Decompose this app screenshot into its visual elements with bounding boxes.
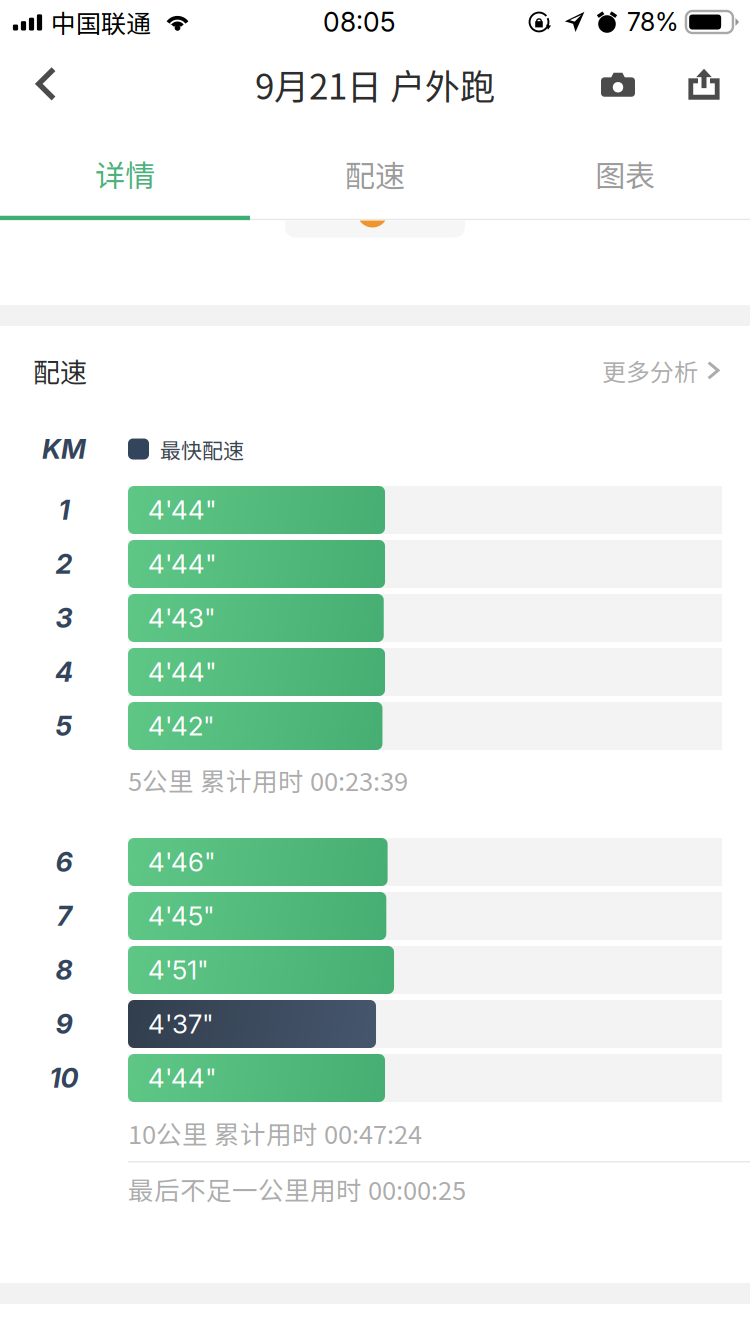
staticText: 10 (49, 1062, 78, 1094)
staticText: 7 (56, 900, 71, 932)
staticText: 08:05 (323, 6, 396, 38)
staticText: 中国联通 (51, 4, 151, 40)
staticText: 4'43" (148, 602, 216, 634)
button[interactable]: 配速 (250, 124, 500, 215)
button[interactable]: Back (11, 44, 79, 124)
staticText: 4'46" (148, 846, 216, 878)
staticText: 9 (55, 1008, 72, 1040)
staticText: 配速 (33, 351, 87, 390)
staticText: 8 (55, 954, 72, 986)
staticText: 1 (58, 494, 69, 526)
staticText: 6 (55, 846, 72, 878)
button[interactable]: 详情 (0, 124, 250, 215)
staticText: 10公里 累计用时 00:47:24 (128, 1114, 422, 1151)
staticText: KM (42, 433, 86, 465)
staticText: 4'44" (148, 1062, 217, 1094)
button[interactable]: 更多分析 (602, 353, 720, 388)
staticText: 4'44" (148, 656, 217, 688)
staticText: 4'51" (148, 954, 209, 986)
button[interactable]: Camera (583, 44, 653, 124)
staticText: 4'44" (148, 548, 217, 580)
staticText: 4'37" (148, 1008, 214, 1040)
staticText: 最后不足一公里用时 00:00:25 (128, 1170, 466, 1207)
staticText: 4'45" (148, 900, 215, 932)
staticText: 配速 (345, 152, 405, 196)
staticText: 3 (55, 602, 72, 634)
staticText: 78% (627, 7, 679, 37)
staticText: 更多分析 (602, 353, 698, 388)
button[interactable]: 图表 (500, 124, 750, 215)
staticText: 4'44" (148, 494, 217, 526)
staticText: 9月21日 户外跑 (255, 59, 495, 110)
staticText: 4'42" (148, 710, 215, 742)
staticText: 图表 (595, 152, 655, 196)
staticText: 2 (55, 548, 72, 580)
staticText: 最快配速 (160, 434, 244, 464)
staticText: 详情 (95, 152, 155, 196)
button[interactable]: Share (673, 44, 735, 124)
staticText: 5 (55, 710, 72, 742)
staticText: 4 (55, 656, 73, 688)
staticText: 5公里 累计用时 00:23:39 (128, 761, 408, 798)
